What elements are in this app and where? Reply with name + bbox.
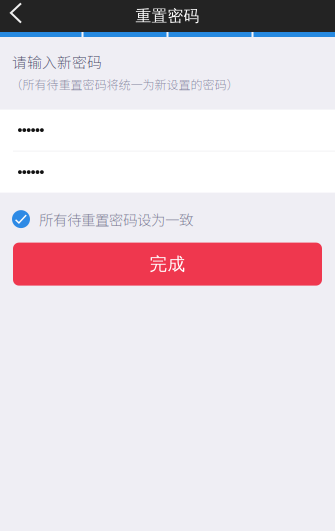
staticText: 请输入新密码: [12, 51, 102, 72]
button[interactable]: 所有待重置密码设为一致: [0, 206, 335, 233]
button[interactable]: Back: [0, 0, 34, 35]
staticText: 重置密码: [135, 6, 199, 26]
button[interactable]: 完成: [13, 243, 322, 286]
staticText: 所有待重置密码设为一致: [39, 209, 193, 230]
staticText: （所有待重置密码将统一为新设置的密码）: [10, 75, 238, 93]
staticText: 完成: [149, 253, 185, 275]
